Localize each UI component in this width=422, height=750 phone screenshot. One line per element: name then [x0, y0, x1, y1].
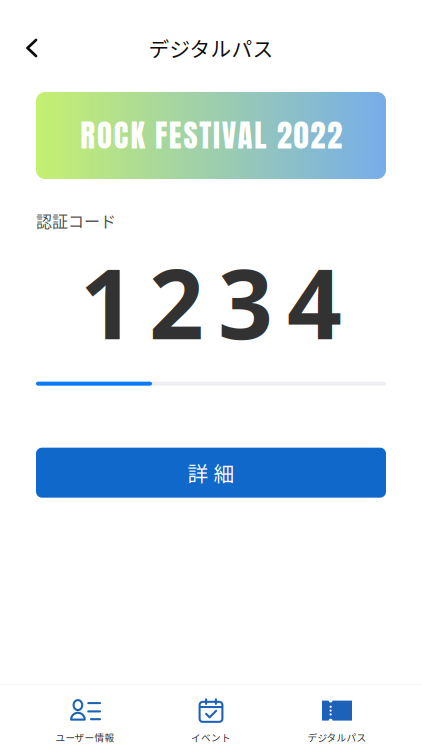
staticText: L [254, 112, 266, 159]
button[interactable]: ユーザー情報 [22, 685, 148, 750]
staticText: V [222, 112, 236, 159]
staticText: F [155, 112, 167, 159]
staticText: K [130, 112, 144, 159]
staticText: 2 [327, 112, 342, 159]
staticText: デジタルパス [148, 33, 273, 63]
staticText: デジタルパス [307, 730, 366, 744]
staticText: 詳 細 [187, 458, 234, 488]
button[interactable]: Back [0, 28, 51, 68]
button[interactable]: イベント [148, 685, 274, 750]
staticText: E [169, 112, 182, 159]
staticText: 認証コード [36, 209, 116, 232]
staticText: S [183, 112, 197, 159]
staticText: 2 [310, 112, 325, 159]
staticText: T [199, 112, 211, 159]
staticText: 0 [293, 112, 308, 159]
staticText: ユーザー情報 [55, 730, 114, 744]
staticText: 1234 [80, 238, 342, 366]
staticText: 2 [277, 112, 292, 159]
staticText: O [97, 112, 112, 159]
button[interactable]: デジタルパス [274, 685, 400, 750]
staticText: I [213, 112, 220, 159]
staticText: イベント [191, 730, 231, 744]
staticText: A [237, 112, 252, 159]
staticText: R [80, 112, 95, 159]
button[interactable]: 詳 細 [0, 448, 422, 498]
staticText: C [114, 112, 129, 159]
